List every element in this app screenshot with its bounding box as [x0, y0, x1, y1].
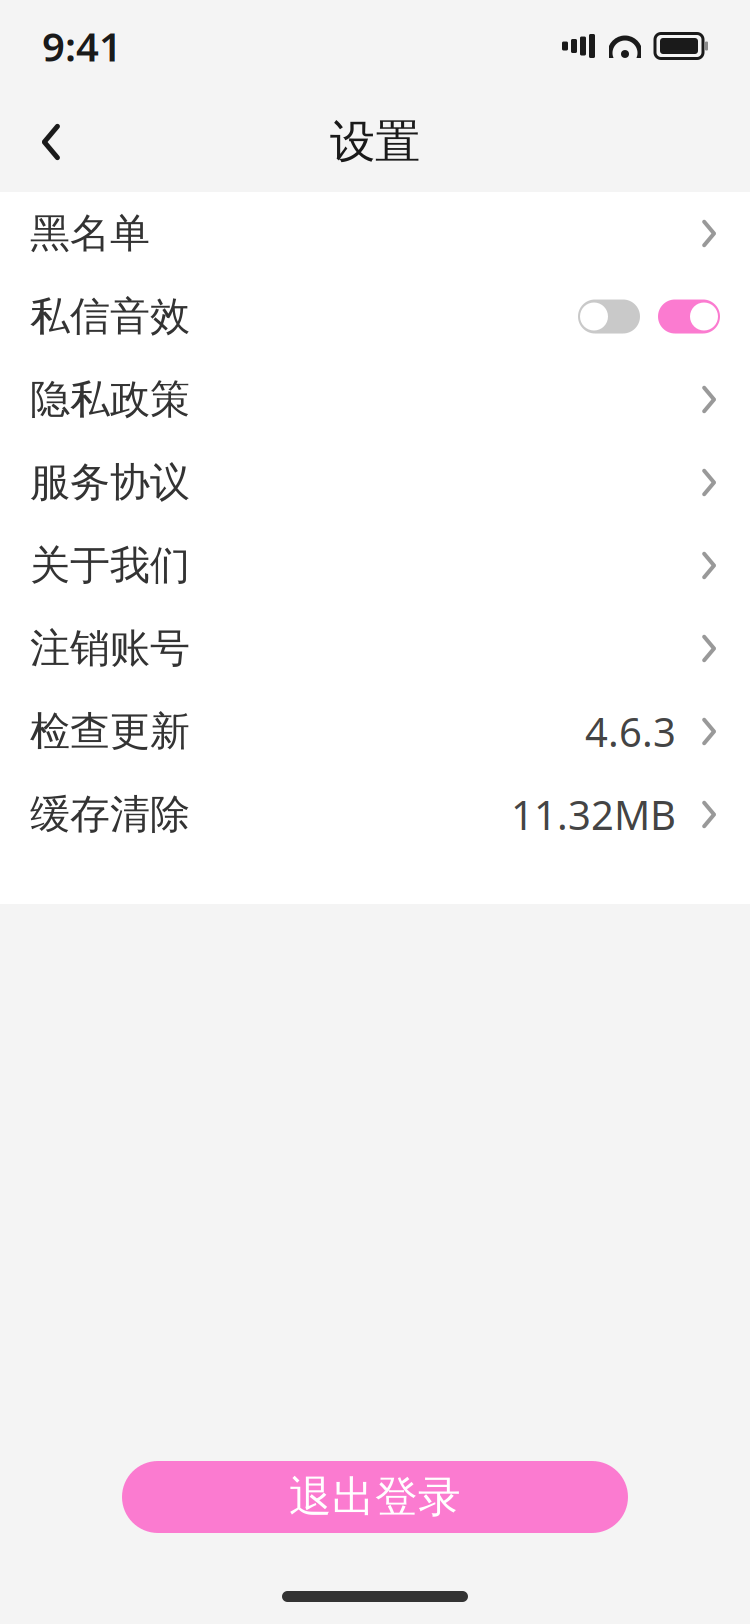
button[interactable]: 关于我们	[0, 524, 750, 607]
staticText: 4.6.3	[585, 705, 676, 758]
button[interactable]: 关闭	[578, 299, 640, 333]
staticText: 服务协议	[30, 458, 190, 507]
button[interactable]: 检查更新	[0, 690, 750, 773]
staticText: 私信音效	[30, 292, 190, 341]
staticText: 设置	[330, 114, 420, 170]
button[interactable]: 私信音效	[0, 275, 750, 358]
staticText: 关于我们	[30, 541, 190, 590]
button[interactable]: 返回	[16, 107, 86, 177]
staticText: 黑名单	[30, 209, 150, 258]
staticText: 11.32MB	[511, 788, 676, 841]
button[interactable]: 注销账号	[0, 607, 750, 690]
button[interactable]: 黑名单	[0, 192, 750, 275]
staticText: 退出登录	[289, 1471, 461, 1523]
staticText: 缓存清除	[30, 790, 190, 839]
staticText: 检查更新	[30, 707, 190, 756]
button[interactable]: 退出登录	[122, 1461, 628, 1533]
button[interactable]: 缓存清除	[0, 773, 750, 856]
button[interactable]: 开启	[658, 299, 720, 333]
button[interactable]: 服务协议	[0, 441, 750, 524]
staticText: 注销账号	[30, 624, 190, 673]
staticText: 隐私政策	[30, 375, 190, 424]
button[interactable]: 隐私政策	[0, 358, 750, 441]
staticText: 9:41	[42, 19, 122, 72]
